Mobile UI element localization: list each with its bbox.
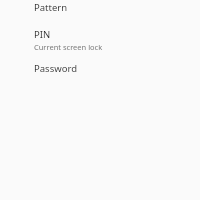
button[interactable]: Password bbox=[0, 62, 200, 89]
staticText: PIN bbox=[34, 28, 51, 41]
button[interactable]: Pattern bbox=[0, 1, 200, 28]
staticText: Password bbox=[34, 62, 77, 75]
button[interactable]: PIN bbox=[0, 28, 200, 62]
staticText: Current screen lock bbox=[34, 42, 103, 52]
staticText: Pattern bbox=[34, 1, 68, 14]
